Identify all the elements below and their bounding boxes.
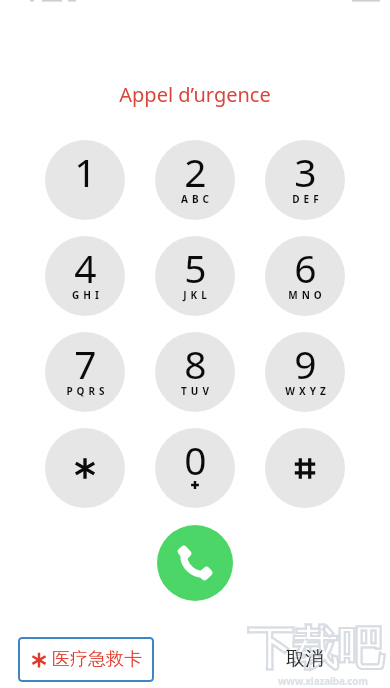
staticText: 取消: [286, 647, 324, 671]
staticText: 5: [184, 241, 207, 294]
staticText: 8: [184, 337, 207, 390]
button[interactable]: 医疗急救卡: [18, 637, 154, 682]
staticText: 医疗急救卡: [52, 648, 142, 671]
staticText: 2: [184, 145, 207, 198]
staticText: 下载吧: [248, 620, 383, 678]
staticText: 3: [294, 145, 317, 198]
button[interactable]: 取消: [286, 647, 324, 671]
button[interactable]: Hash: [265, 428, 345, 508]
staticText: DEF: [292, 192, 323, 206]
button[interactable]: 2 ABC: [155, 140, 235, 220]
staticText: 7: [74, 337, 97, 390]
staticText: 9: [294, 337, 317, 390]
staticText: 4: [74, 241, 97, 294]
button[interactable]: Star: [45, 428, 125, 508]
staticText: GHI: [72, 288, 103, 302]
button[interactable]: 1: [45, 140, 125, 220]
staticText: PQRS: [66, 384, 109, 398]
staticText: www.xiazaiba.com: [278, 674, 368, 688]
button[interactable]: 3 DEF: [265, 140, 345, 220]
staticText: Appel d’urgence: [119, 81, 271, 108]
staticText: MNO: [288, 288, 326, 302]
staticText: TUV: [181, 384, 213, 398]
button[interactable]: 6 MNO: [265, 236, 345, 316]
staticText: 6: [294, 241, 317, 294]
staticText: JKL: [183, 288, 211, 302]
staticText: ABC: [181, 192, 213, 206]
button[interactable]: 0 plus: [155, 428, 235, 508]
button[interactable]: 7 PQRS: [45, 332, 125, 412]
button[interactable]: Call: [157, 525, 233, 601]
staticText: 0: [184, 433, 207, 486]
button[interactable]: 5 JKL: [155, 236, 235, 316]
staticText: 1: [74, 145, 97, 198]
staticText: WXYZ: [285, 384, 330, 398]
button[interactable]: 4 GHI: [45, 236, 125, 316]
button[interactable]: 9 WXYZ: [265, 332, 345, 412]
button[interactable]: 8 TUV: [155, 332, 235, 412]
